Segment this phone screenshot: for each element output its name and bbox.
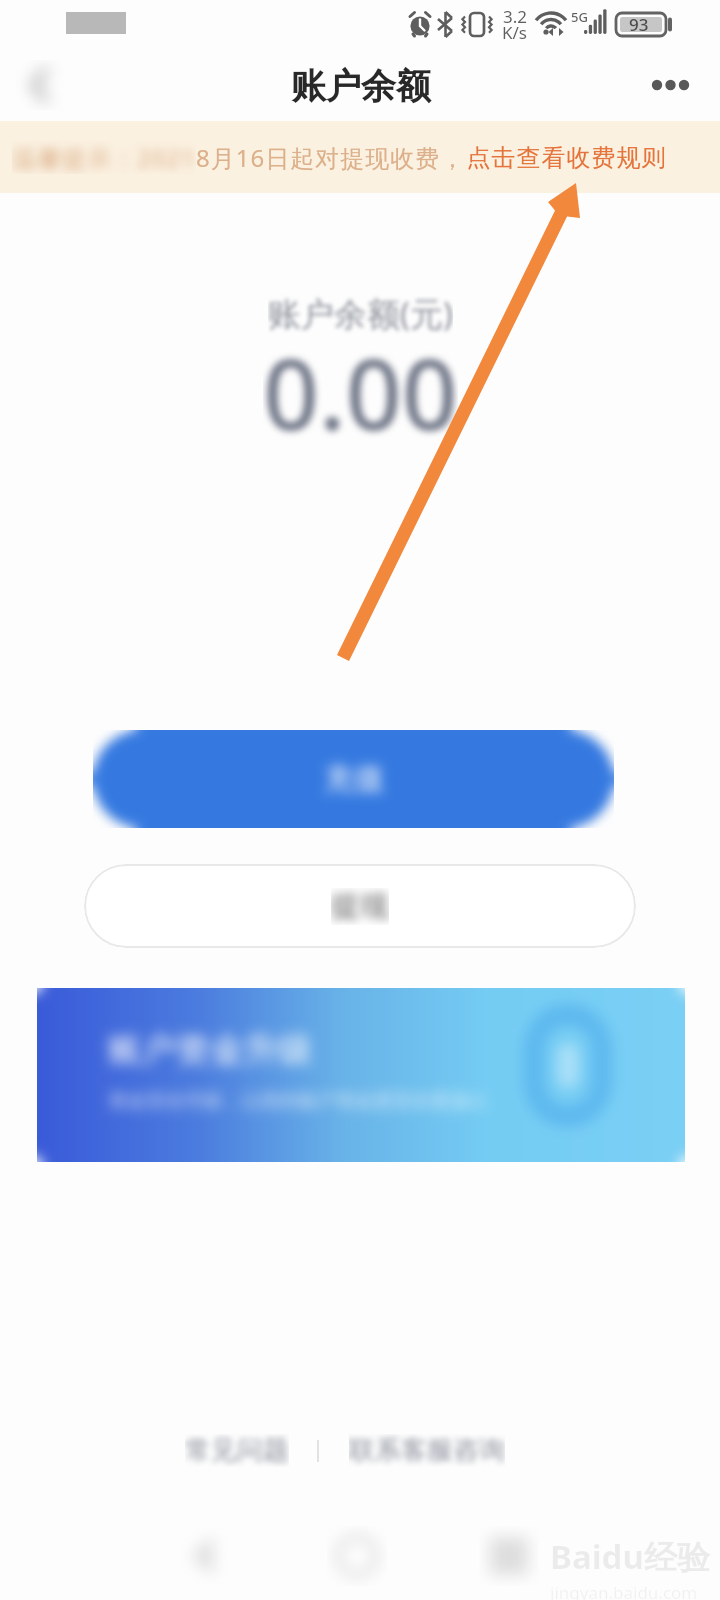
button[interactable]: Back [173, 1526, 233, 1586]
staticText: 0.00 [263, 325, 458, 458]
staticText: 8月16日起对提现收费， [196, 141, 466, 174]
staticText: 联系客服咨询 [349, 1434, 505, 1467]
button[interactable]: 常见问题 [185, 1434, 289, 1467]
button[interactable]: Home [327, 1526, 387, 1586]
button[interactable]: 温馨提示：2021 [0, 121, 720, 193]
button[interactable]: 联系客服咨询 [349, 1434, 505, 1467]
button[interactable]: 充值 [93, 730, 614, 828]
button[interactable]: Back [16, 60, 66, 110]
button[interactable]: More options [648, 61, 696, 109]
staticText: 账户资金升级 [108, 1028, 312, 1071]
staticText: 提现 [331, 888, 389, 925]
button[interactable]: Recent apps [479, 1526, 539, 1586]
button[interactable]: 提现 [84, 864, 636, 948]
staticText: Baidu经验 [550, 1534, 710, 1579]
staticText: 账户余额(元) [268, 291, 453, 336]
staticText: 账户余额 [291, 64, 431, 108]
staticText: 常见问题 [185, 1434, 289, 1467]
staticText: 资金安全升级，让您的账户资金更安全更放心 [108, 1089, 488, 1113]
staticText: 温馨提示：2021 [12, 141, 196, 174]
staticText: 93 [629, 13, 649, 36]
staticText: 5G [571, 8, 588, 26]
staticText: 3.2 [503, 5, 528, 28]
staticText: K/s [502, 21, 527, 44]
staticText: jingyan.baidu.com [550, 1581, 698, 1600]
button[interactable]: 账户资金升级 [37, 988, 685, 1162]
staticText: 点击查看收费规则 [466, 143, 666, 173]
staticText: 充值 [324, 760, 384, 798]
